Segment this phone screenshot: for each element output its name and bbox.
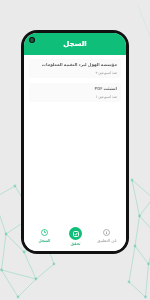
other: تحقق <box>69 227 82 240</box>
staticText: منذ اسبوعين ٣ <box>95 70 117 75</box>
staticText: السجل <box>63 40 87 48</box>
staticText: عن التطبيق <box>97 238 117 244</box>
button[interactable]: مؤسسة الهول لبرد التقنية المعلومات <box>29 59 121 78</box>
other: عن التطبيق <box>103 229 110 236</box>
staticText: مؤسسة الهول لبرد التقنية المعلومات <box>41 62 117 68</box>
button[interactable]: السجل <box>28 228 60 244</box>
staticText: السجل <box>38 238 51 243</box>
other: السجل <box>41 229 48 236</box>
staticText: PDF انشئت <box>94 86 117 92</box>
staticText: تحقق <box>70 241 81 246</box>
button[interactable]: PDF انشئت <box>29 83 121 102</box>
button[interactable]: عن التطبيق <box>91 228 122 245</box>
staticText: منذ اسبوعين ١ <box>95 94 117 99</box>
button[interactable]: تحقق <box>60 226 91 247</box>
